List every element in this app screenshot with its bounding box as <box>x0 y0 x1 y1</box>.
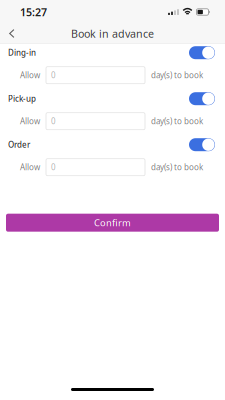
staticText: Confirm <box>94 216 131 229</box>
staticText: day(s) to book <box>151 162 203 172</box>
staticText: 0 <box>51 70 56 80</box>
staticText: day(s) to book <box>151 116 203 126</box>
staticText: Allow <box>20 70 40 80</box>
staticText: Ding-in <box>8 47 36 58</box>
staticText: 0 <box>51 162 56 172</box>
staticText: Order <box>8 139 30 150</box>
button[interactable]: Back <box>0 24 24 43</box>
staticText: Allow <box>20 116 40 126</box>
staticText: 0 <box>51 116 56 126</box>
button[interactable]: Confirm <box>6 214 219 232</box>
staticText: Book in advance <box>71 26 154 41</box>
staticText: day(s) to book <box>151 70 203 80</box>
staticText: Allow <box>20 162 40 172</box>
staticText: 15:27 <box>20 5 47 19</box>
staticText: Pick-up <box>8 93 36 104</box>
